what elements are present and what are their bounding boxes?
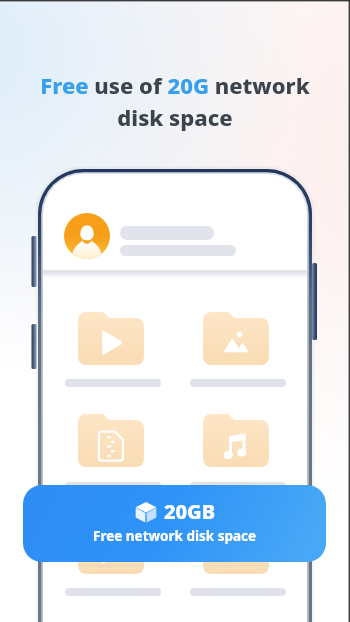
button[interactable]: Documents folder bbox=[78, 414, 144, 467]
staticText: Free network disk space bbox=[93, 527, 257, 545]
button[interactable]: Apps folder bbox=[203, 521, 269, 574]
button[interactable]: Photos folder bbox=[203, 312, 269, 365]
button[interactable]: Downloads folder bbox=[78, 521, 144, 574]
staticText: Free use of 20G network bbox=[40, 70, 310, 100]
button[interactable]: Music folder bbox=[203, 414, 269, 467]
staticText: disk space bbox=[117, 102, 233, 132]
button[interactable]: 20GB bbox=[23, 485, 326, 562]
button[interactable]: Profile avatar bbox=[64, 213, 110, 259]
staticText: 20GB bbox=[164, 498, 216, 525]
button[interactable]: Video folder bbox=[78, 312, 144, 365]
